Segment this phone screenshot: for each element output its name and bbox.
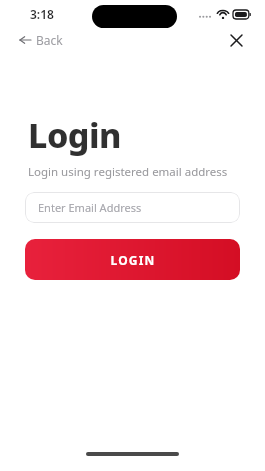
staticText: Enter Email Address [38, 200, 142, 215]
button[interactable]: LOGIN [25, 239, 240, 280]
staticText: 3:18 [30, 6, 54, 22]
button[interactable]: Enter Email Address [25, 192, 240, 223]
staticText: LOGIN [110, 252, 156, 268]
button[interactable]: Close [225, 29, 247, 51]
staticText: Back [36, 32, 63, 48]
button[interactable]: Back [16, 29, 67, 51]
staticText: Login using registered email address [28, 164, 228, 180]
staticText: Login [28, 112, 121, 158]
